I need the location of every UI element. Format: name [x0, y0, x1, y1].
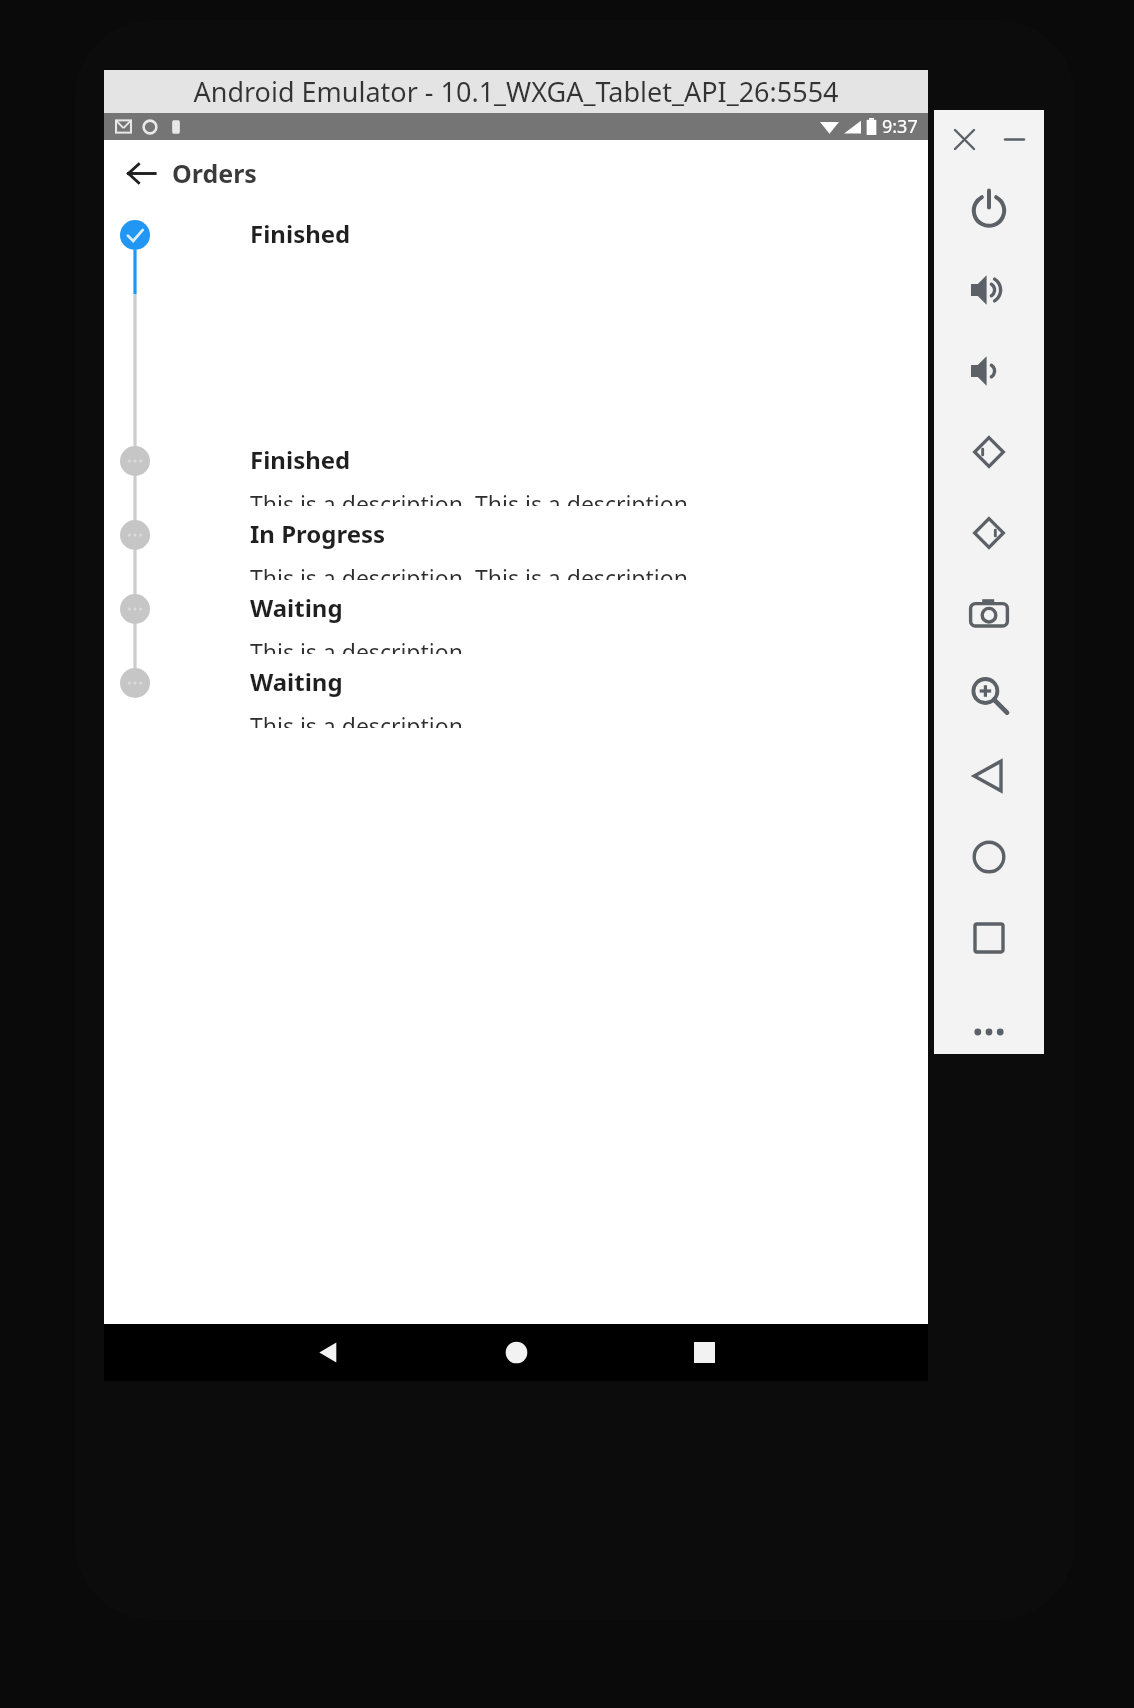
button[interactable]: More options: [934, 1010, 1044, 1054]
button[interactable]: Home: [934, 816, 1044, 897]
staticText: Android Emulator - 10.1_WXGA_Tablet_API_…: [193, 73, 839, 110]
button[interactable]: Close: [945, 120, 983, 158]
button[interactable]: Volume down: [934, 330, 1044, 411]
staticText: This is a description.: [250, 636, 470, 654]
button[interactable]: Rotate right: [934, 492, 1044, 573]
button[interactable]: Overview: [658, 1324, 750, 1381]
staticText: Waiting: [250, 591, 343, 624]
button[interactable]: Take screenshot: [934, 573, 1044, 654]
button[interactable]: Home: [470, 1324, 562, 1381]
button[interactable]: Waiting: [104, 580, 928, 654]
staticText: Finished: [250, 217, 351, 250]
staticText: This is a description. This is a descrip…: [250, 488, 695, 506]
button[interactable]: In Progress: [104, 506, 928, 580]
staticText: This is a description.: [250, 710, 470, 728]
button[interactable]: Zoom: [934, 654, 1044, 735]
staticText: Waiting: [250, 665, 343, 698]
staticText: In Progress: [250, 517, 386, 550]
button[interactable]: Power: [934, 168, 1044, 249]
button[interactable]: Back: [118, 150, 164, 196]
staticText: Finished: [250, 443, 351, 476]
button[interactable]: Overview: [934, 897, 1044, 978]
button[interactable]: Back: [282, 1324, 374, 1381]
button[interactable]: Finished: [104, 206, 928, 432]
staticText: Orders: [172, 156, 257, 190]
button[interactable]: Rotate left: [934, 411, 1044, 492]
staticText: 9:37: [882, 114, 918, 139]
button[interactable]: Minimize: [995, 120, 1033, 158]
button[interactable]: Back: [934, 735, 1044, 816]
button[interactable]: Volume up: [934, 249, 1044, 330]
button[interactable]: Waiting: [104, 654, 928, 728]
button[interactable]: Finished: [104, 432, 928, 506]
staticText: This is a description. This is a descrip…: [250, 562, 695, 580]
